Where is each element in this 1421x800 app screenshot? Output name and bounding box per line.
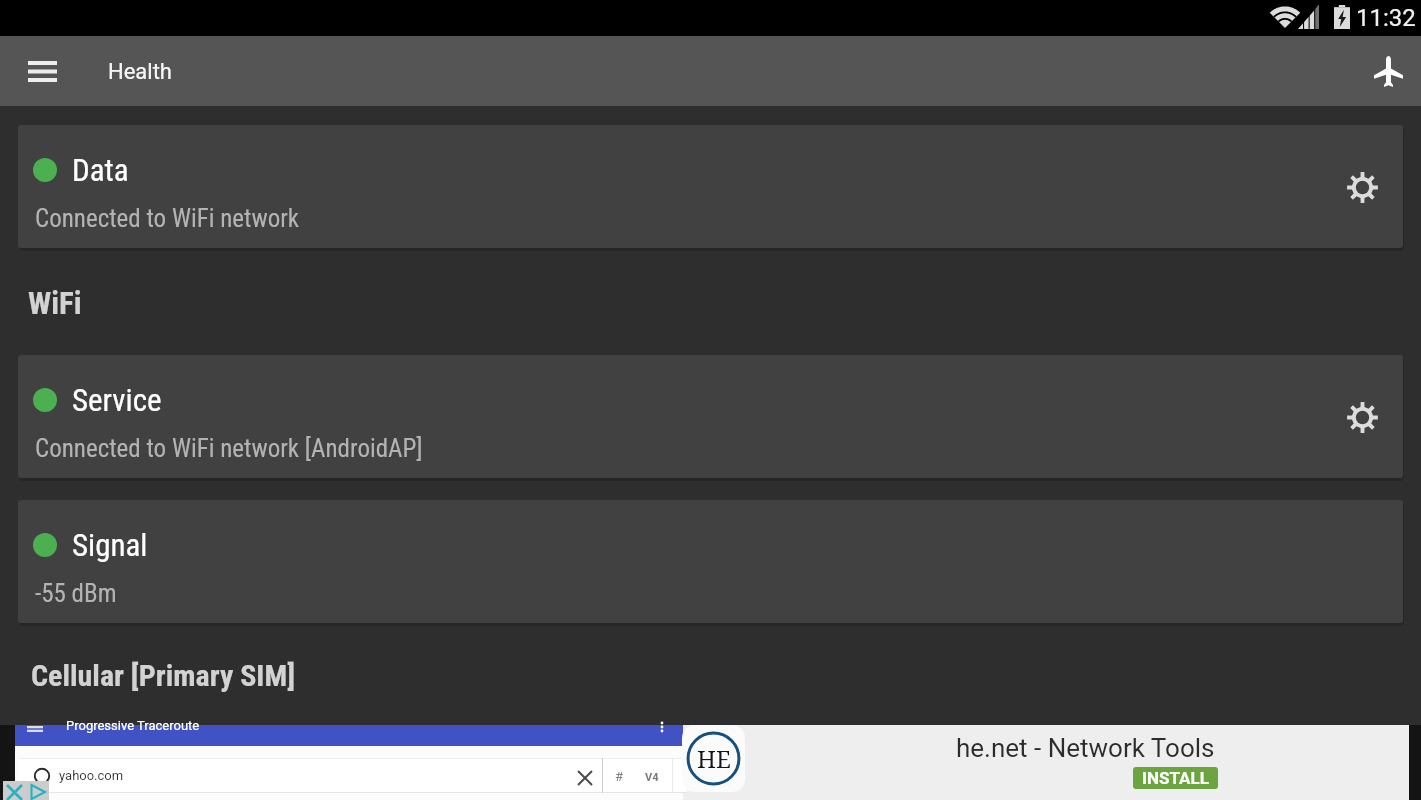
staticText: he.net - Network Tools bbox=[956, 733, 1215, 763]
staticText: Connected to WiFi network [AndroidAP] bbox=[35, 434, 423, 463]
button[interactable]: Open navigation drawer bbox=[14, 43, 70, 99]
button[interactable]: Signal bbox=[18, 500, 1403, 623]
button[interactable]: INSTALL bbox=[1133, 767, 1218, 789]
staticText: # bbox=[615, 769, 624, 784]
staticText: 11:32 bbox=[1356, 4, 1416, 32]
button[interactable]: Settings bbox=[1338, 163, 1386, 211]
button[interactable]: Close ad bbox=[3, 781, 26, 800]
staticText: INSTALL bbox=[1142, 768, 1209, 788]
staticText: HE bbox=[697, 742, 731, 775]
button[interactable]: Airplane mode bbox=[1361, 44, 1415, 98]
staticText: Progressive Traceroute bbox=[66, 718, 200, 733]
button[interactable]: Ad choices bbox=[26, 781, 49, 800]
button[interactable]: Settings bbox=[1338, 393, 1386, 441]
button[interactable]: Advertisement: he.net - Network Tools bbox=[0, 725, 1421, 800]
staticText: Signal bbox=[72, 527, 148, 563]
staticText: yahoo.com bbox=[59, 768, 124, 783]
staticText: Health bbox=[108, 59, 172, 85]
staticText: Data bbox=[72, 152, 129, 188]
button[interactable]: Service bbox=[18, 355, 1403, 478]
staticText: WiFi bbox=[28, 285, 82, 321]
staticText: -55 dBm bbox=[35, 579, 117, 608]
staticText: Cellular [Primary SIM] bbox=[31, 658, 296, 693]
staticText: Service bbox=[72, 382, 162, 418]
staticText: V4 bbox=[645, 771, 659, 784]
staticText: Connected to WiFi network bbox=[35, 204, 300, 233]
button[interactable]: Data bbox=[18, 125, 1403, 248]
